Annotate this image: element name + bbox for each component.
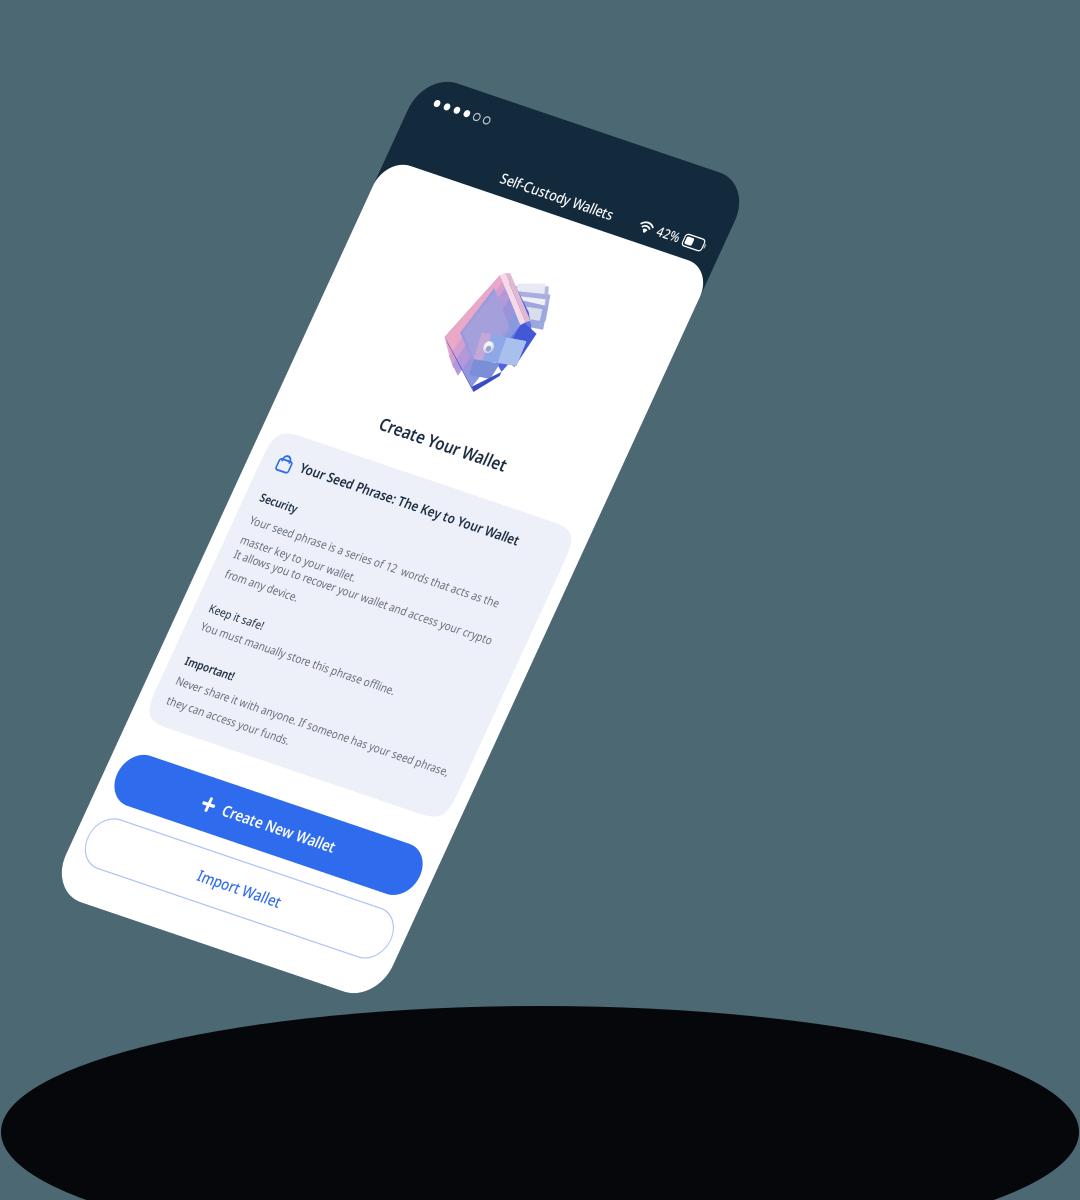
staticText: Create Your Wallet	[432, 446, 648, 478]
staticText: Never share it with anyone. If someone h…	[305, 869, 771, 919]
staticText: Self-Custody Wallets	[444, 82, 636, 108]
staticText: Your seed phrase is a series of 12 words…	[305, 631, 731, 682]
staticText: Important!	[305, 840, 388, 861]
staticText: Your Seed Phrase: The Key to Your Wallet	[344, 540, 718, 565]
staticText: Security	[305, 598, 368, 619]
button[interactable]: Create New Wallet	[281, 988, 799, 1062]
staticText: It allows you to recover your wallet and…	[305, 682, 746, 732]
staticText: Keep it safe!	[305, 762, 397, 783]
staticText: You must manually store this phrase offl…	[305, 788, 636, 810]
